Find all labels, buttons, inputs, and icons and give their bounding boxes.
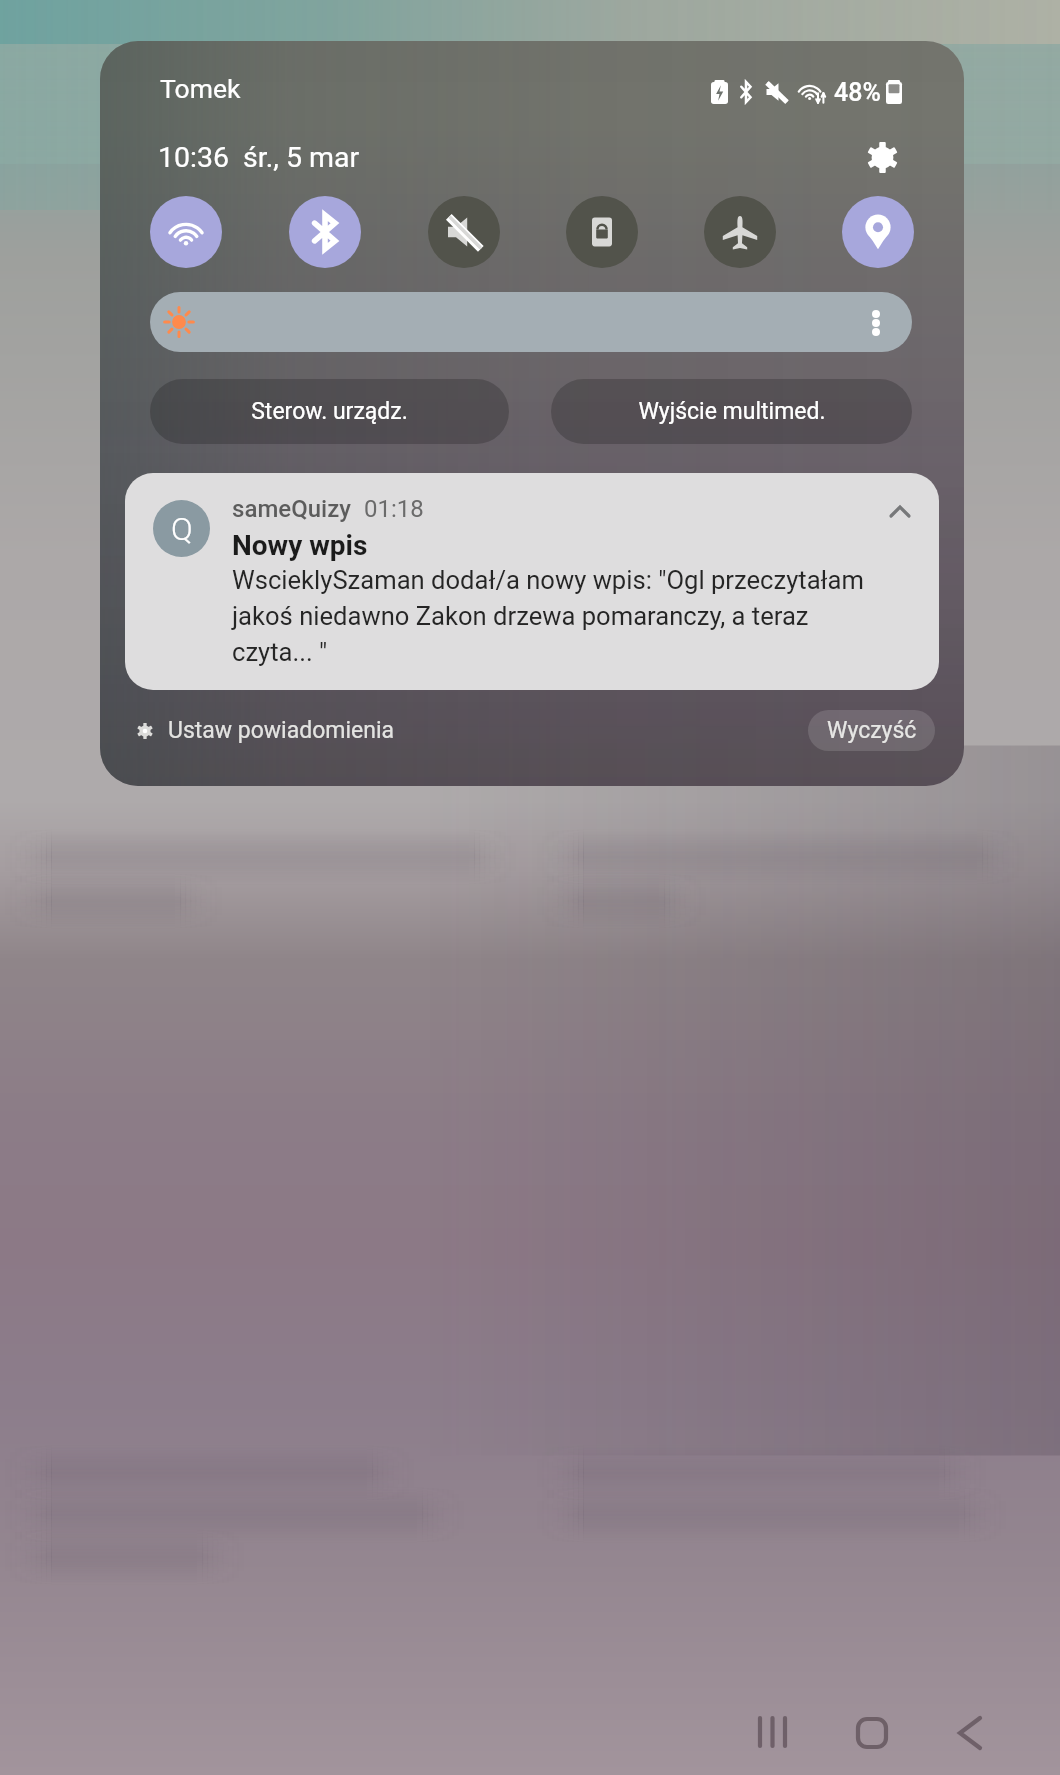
- button[interactable]: Collapse notification: [874, 485, 926, 537]
- button[interactable]: Recent apps: [728, 1690, 818, 1774]
- button[interactable]: Wyczyść: [808, 710, 935, 751]
- button[interactable]: Bluetooth: [289, 196, 361, 268]
- button[interactable]: Sound off: [428, 196, 500, 268]
- staticText: Ustaw powiadomienia: [168, 717, 395, 744]
- staticText: Wyczyść: [827, 717, 917, 744]
- staticText: 10:36 śr., 5 mar: [158, 141, 360, 174]
- staticText: 48%: [834, 78, 881, 107]
- button[interactable]: Ustaw powiadomienia: [137, 717, 403, 744]
- button[interactable]: Settings: [858, 133, 906, 181]
- staticText: Q: [171, 510, 193, 548]
- button[interactable]: Wi-Fi: [150, 196, 222, 268]
- staticText: Nowy wpis: [232, 529, 368, 562]
- staticText: 01:18: [364, 495, 424, 523]
- button[interactable]: Location: [842, 196, 914, 268]
- button[interactable]: Home: [828, 1690, 916, 1774]
- button[interactable]: Q: [125, 473, 939, 690]
- button[interactable]: Back: [928, 1690, 1016, 1774]
- staticText: WscieklySzaman dodał/a nowy wpis: "Ogl p…: [232, 565, 864, 667]
- button[interactable]: Brightness: [150, 292, 912, 352]
- button[interactable]: Wyjście multimed.: [551, 379, 912, 444]
- staticText: Wyjście multimed.: [638, 398, 826, 425]
- button[interactable]: Sterow. urządz.: [150, 379, 509, 444]
- button[interactable]: Screen lock: [566, 196, 638, 268]
- staticText: Sterow. urządz.: [251, 398, 408, 425]
- staticText: sameQuizy: [232, 495, 351, 523]
- staticText: Tomek: [160, 73, 241, 104]
- button[interactable]: Airplane mode: [704, 196, 776, 268]
